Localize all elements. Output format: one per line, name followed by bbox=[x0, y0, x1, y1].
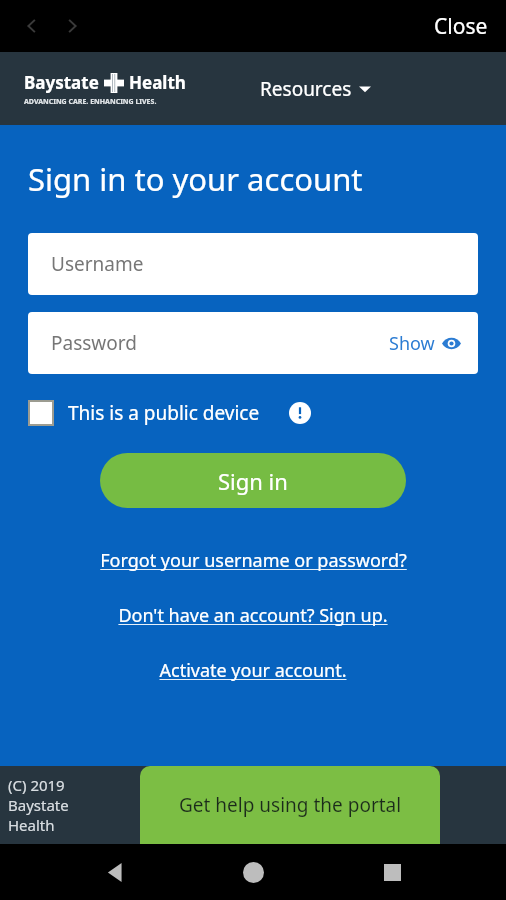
staticText: Show bbox=[389, 331, 435, 356]
staticText: Baystate bbox=[24, 71, 99, 94]
staticText: Forgot your username or password? bbox=[100, 548, 407, 573]
button[interactable]: Back bbox=[91, 848, 139, 896]
button[interactable]: Activate your account. bbox=[153, 656, 353, 685]
staticText: Resources bbox=[260, 76, 352, 102]
button[interactable]: Resources bbox=[252, 70, 379, 108]
button[interactable]: Get help using the portal bbox=[140, 766, 440, 844]
button[interactable]: Home bbox=[229, 848, 277, 896]
button[interactable]: Password bbox=[28, 312, 478, 374]
staticText: Sign in bbox=[218, 466, 288, 496]
button[interactable]: Close bbox=[416, 4, 506, 49]
staticText: Activate your account. bbox=[159, 658, 347, 683]
button[interactable]: Back bbox=[12, 6, 52, 46]
button[interactable]: This is a public device bbox=[28, 400, 260, 426]
staticText: (C) 2019 bbox=[8, 775, 65, 795]
button[interactable]: Sign in bbox=[100, 453, 406, 508]
staticText: Baystate bbox=[8, 795, 69, 815]
staticText: Username bbox=[51, 251, 144, 277]
staticText: ADVANCING CARE. ENHANCING LIVES. bbox=[24, 97, 157, 107]
button[interactable]: Username bbox=[28, 233, 478, 295]
button[interactable]: Forgot your username or password? bbox=[94, 546, 413, 575]
staticText: Sign in to your account bbox=[28, 158, 363, 200]
staticText: Close bbox=[434, 12, 488, 41]
staticText: Health bbox=[129, 71, 186, 94]
button[interactable]: Recent apps bbox=[368, 848, 416, 896]
button[interactable]: Baystate bbox=[24, 71, 186, 107]
staticText: Don't have an account? Sign up. bbox=[118, 603, 388, 628]
staticText: Password bbox=[51, 330, 137, 356]
button[interactable]: Show bbox=[389, 331, 478, 356]
button[interactable]: Forward bbox=[52, 6, 92, 46]
staticText: Health bbox=[8, 815, 55, 835]
button[interactable]: Don't have an account? Sign up. bbox=[112, 601, 394, 630]
staticText: This is a public device bbox=[68, 400, 260, 426]
staticText: Get help using the portal bbox=[179, 792, 402, 818]
button[interactable]: More information bbox=[285, 398, 315, 428]
